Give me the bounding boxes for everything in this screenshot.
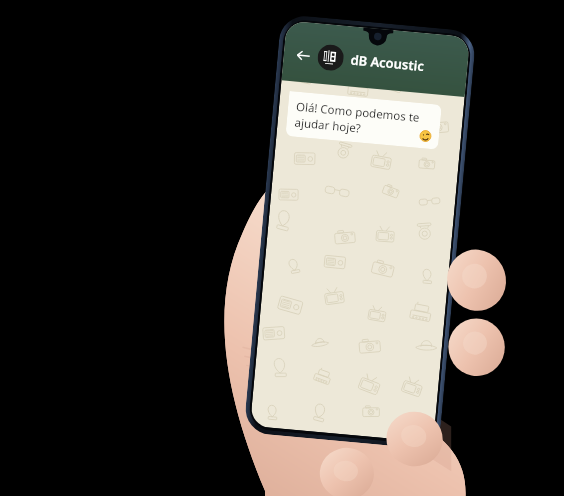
button[interactable]: Olá! Como podemos te ajudar hoje? bbox=[285, 91, 442, 150]
staticText: Olá! Como podemos te ajudar hoje? bbox=[294, 99, 421, 141]
button[interactable]: Back bbox=[292, 44, 314, 66]
button[interactable]: dB Acoustic bbox=[350, 50, 425, 75]
button[interactable] bbox=[317, 43, 345, 72]
